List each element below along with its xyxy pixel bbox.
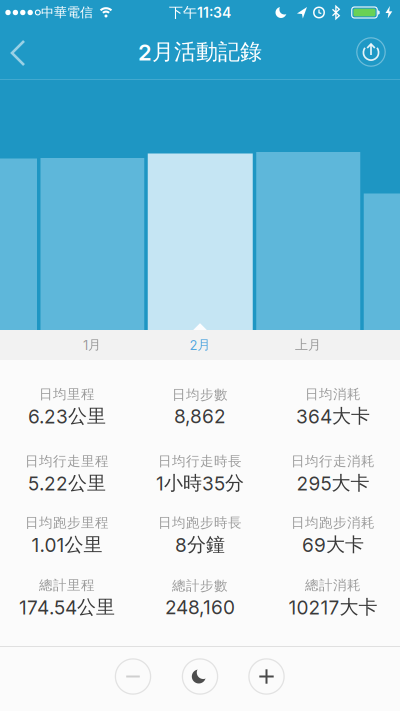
staticText: 日均跑步里程 — [25, 514, 109, 531]
staticText: 日均步數 — [172, 386, 228, 403]
staticText: 10217大卡 — [288, 596, 377, 619]
staticText: 8,862 — [174, 405, 226, 427]
staticText: 日均跑步時長 — [158, 514, 242, 531]
staticText: 總計步數 — [172, 577, 228, 594]
staticText: 2月 — [189, 337, 210, 353]
staticText: 日均消耗 — [305, 386, 361, 403]
staticText: 6.23公里 — [28, 405, 106, 428]
button[interactable]: 上月 — [268, 330, 348, 360]
staticText: 中華電信 — [41, 4, 93, 20]
staticText: 日均里程 — [39, 386, 95, 403]
staticText: 174.54公里 — [19, 596, 115, 619]
staticText: 248,160 — [165, 596, 235, 618]
staticText: 69大卡 — [302, 533, 364, 556]
button[interactable]: 2月 — [160, 330, 240, 360]
button[interactable] — [114, 657, 152, 695]
staticText: 8分鐘 — [175, 533, 225, 556]
staticText: 1月 — [83, 337, 101, 353]
button[interactable] — [354, 35, 388, 69]
button[interactable] — [0, 35, 40, 71]
staticText: 日均跑步消耗 — [291, 514, 375, 531]
staticText: 295大卡 — [296, 472, 369, 495]
staticText: 日均行走消耗 — [291, 453, 375, 470]
staticText: 2月活動記錄 — [138, 38, 262, 65]
button[interactable] — [181, 657, 219, 695]
staticText: 日均行走里程 — [25, 453, 109, 470]
staticText: 364大卡 — [296, 405, 370, 428]
staticText: 總計消耗 — [305, 577, 361, 594]
button[interactable] — [247, 657, 285, 695]
button[interactable]: 1月 — [52, 330, 132, 360]
staticText: 1.01公里 — [31, 533, 102, 556]
staticText: 上月 — [295, 337, 321, 353]
staticText: 1小時35分 — [156, 472, 244, 495]
staticText: 日均行走時長 — [158, 453, 242, 470]
staticText: 總計里程 — [39, 577, 95, 594]
staticText: 下午11:34 — [169, 4, 231, 21]
staticText: 5.22公里 — [28, 472, 106, 495]
